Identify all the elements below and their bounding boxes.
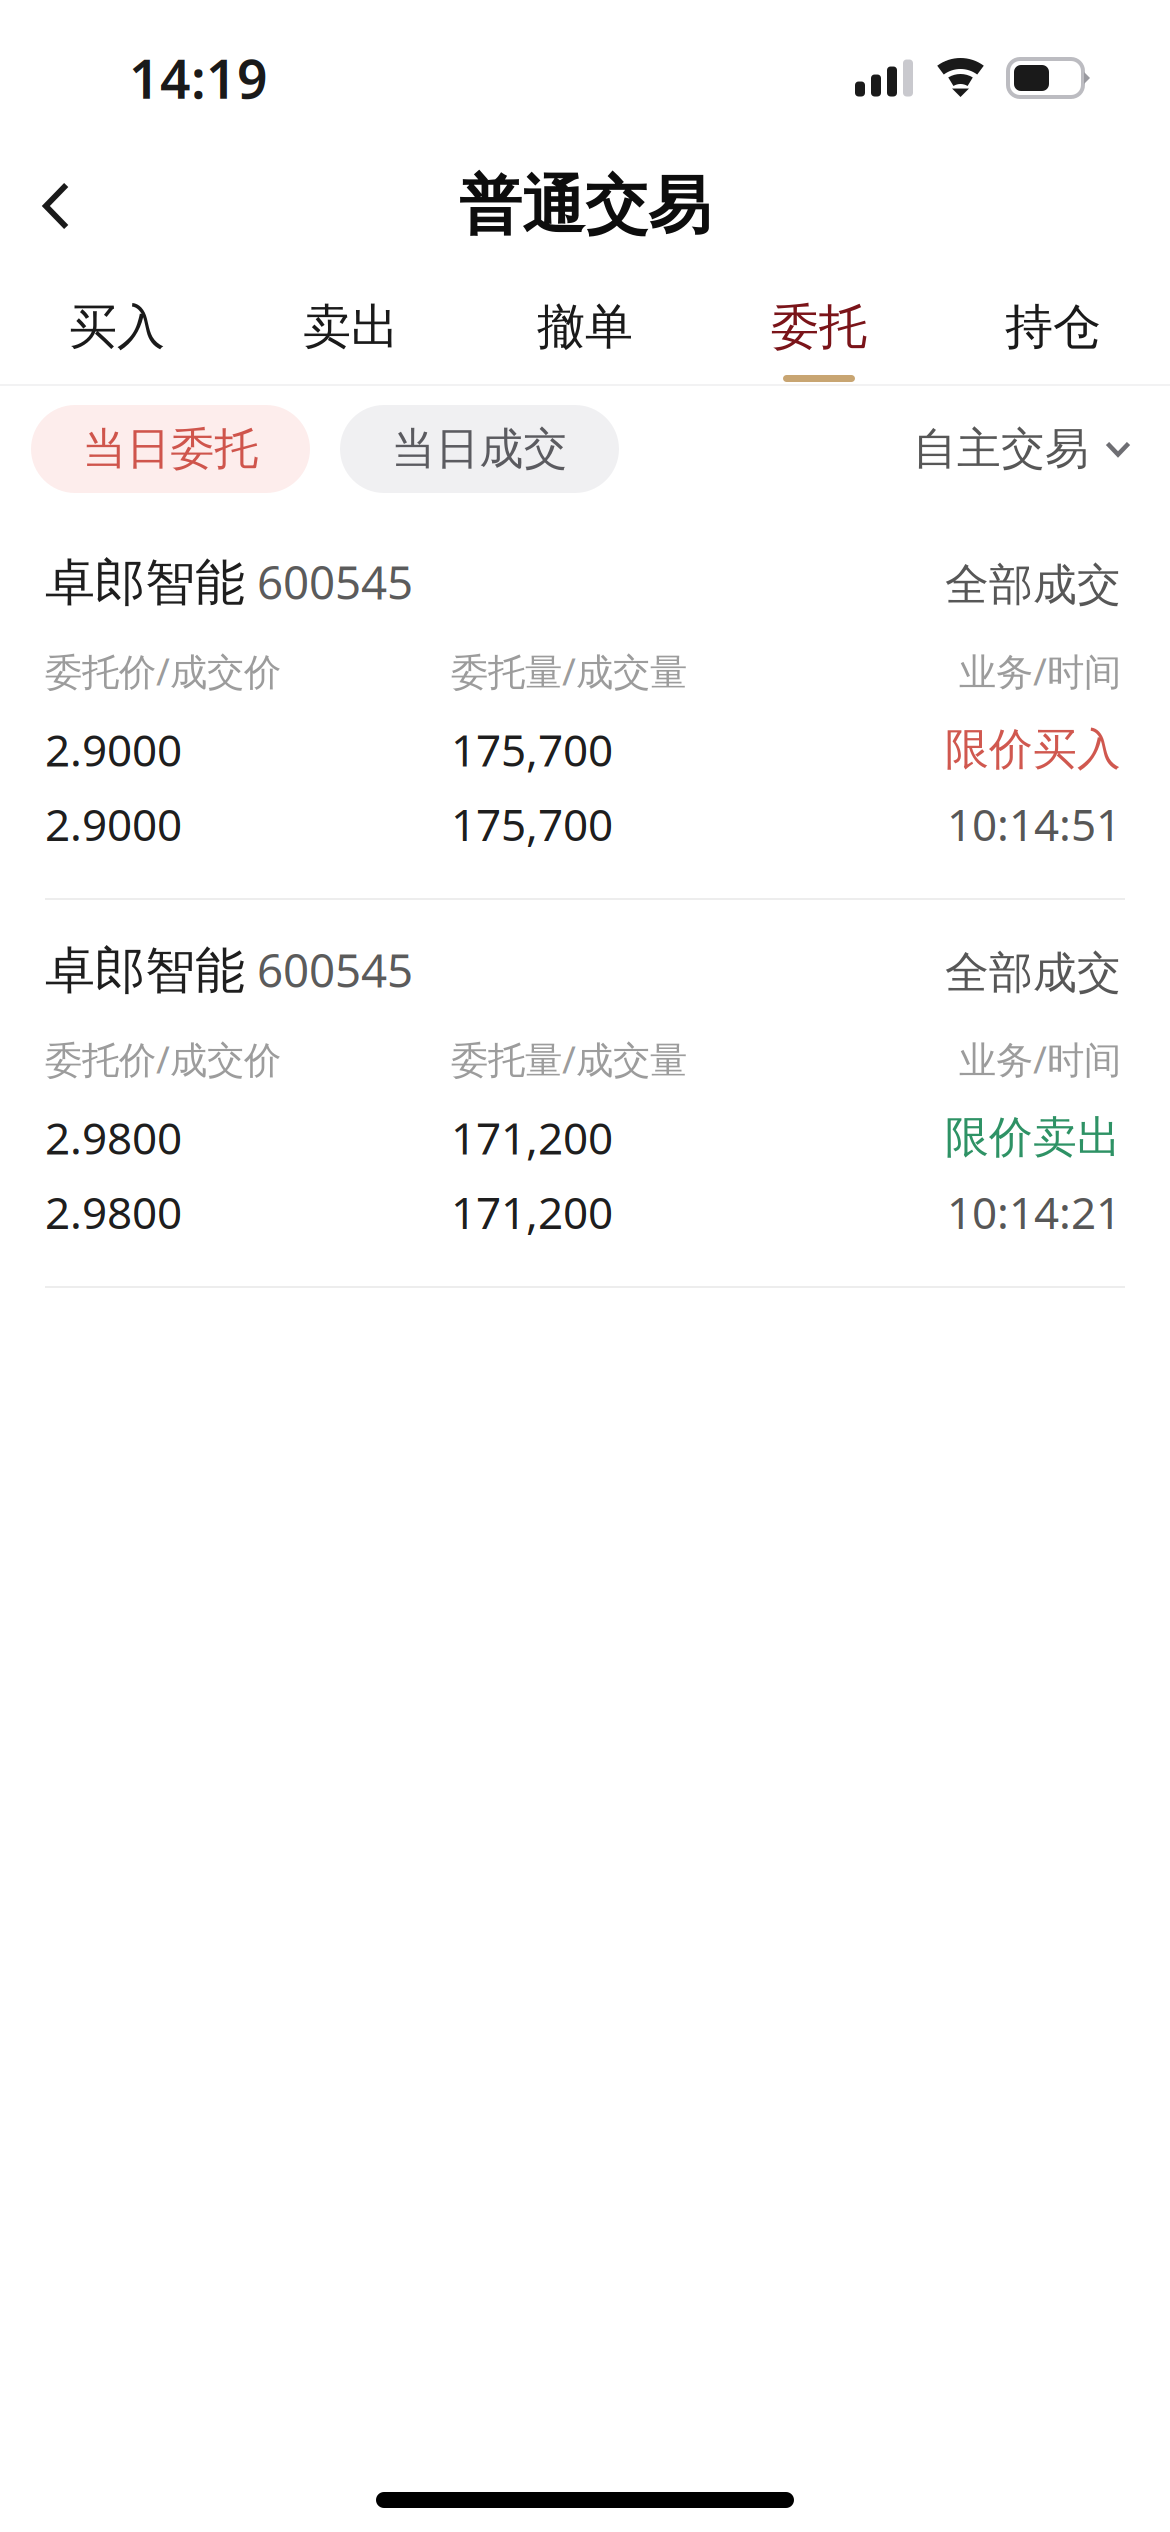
staticText: 自主交易: [913, 421, 1089, 477]
staticText: 2.9800: [45, 1107, 182, 1167]
staticText: 2.9000: [45, 719, 182, 779]
staticText: 600545: [245, 939, 413, 1001]
staticText: 全部成交: [945, 945, 1121, 1000]
staticText: 卓郎智能: [45, 939, 245, 1002]
button[interactable]: 卓郎智能: [0, 926, 1170, 1286]
button[interactable]: 卓郎智能: [0, 538, 1170, 898]
button[interactable]: 卖出: [234, 256, 468, 386]
button[interactable]: 委托: [702, 256, 936, 386]
staticText: 171,200: [451, 1107, 613, 1167]
button[interactable]: 当日成交: [340, 405, 619, 493]
staticText: 普通交易: [459, 166, 711, 245]
staticText: 171,200: [451, 1182, 613, 1242]
staticText: 600545: [245, 551, 413, 613]
staticText: 14:19: [129, 42, 268, 114]
staticText: 限价买入: [945, 722, 1121, 777]
button[interactable]: 持仓: [936, 256, 1170, 386]
button[interactable]: Back: [0, 156, 140, 256]
staticText: 175,700: [451, 794, 613, 854]
staticText: 买入: [69, 297, 165, 357]
staticText: 委托量/成交量: [451, 1034, 687, 1084]
staticText: 委托价/成交价: [45, 646, 281, 696]
staticText: 限价卖出: [945, 1110, 1121, 1165]
staticText: 委托: [771, 297, 867, 357]
staticText: 当日成交: [391, 421, 567, 477]
button[interactable]: 撤单: [468, 256, 702, 386]
staticText: 2.9000: [45, 794, 182, 854]
staticText: 10:14:51: [947, 794, 1121, 854]
staticText: 委托价/成交价: [45, 1034, 281, 1084]
staticText: 委托量/成交量: [451, 646, 687, 696]
staticText: 卓郎智能: [45, 551, 245, 614]
staticText: 卖出: [303, 297, 399, 357]
staticText: 2.9800: [45, 1182, 182, 1242]
button[interactable]: 自主交易: [913, 405, 1131, 493]
button[interactable]: 买入: [0, 256, 234, 386]
staticText: 持仓: [1005, 297, 1101, 357]
button[interactable]: 当日委托: [31, 405, 310, 493]
staticText: 10:14:21: [947, 1182, 1121, 1242]
staticText: 业务/时间: [959, 1034, 1121, 1084]
staticText: 全部成交: [945, 557, 1121, 612]
staticText: 撤单: [537, 297, 633, 357]
staticText: 当日委托: [82, 421, 258, 477]
staticText: 175,700: [451, 719, 613, 779]
staticText: 业务/时间: [959, 646, 1121, 696]
